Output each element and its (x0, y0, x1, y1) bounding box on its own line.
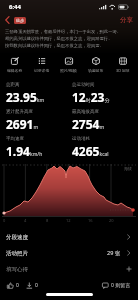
staticText: 12时23分 (72, 89, 110, 105)
button[interactable]: 徒步 (16, 18, 24, 23)
button[interactable]: 照片/视频 (55, 57, 82, 73)
staticText: 0 (3, 218, 6, 223)
staticText: 分享 (120, 16, 133, 24)
staticText: 0 (35, 282, 38, 289)
staticText: 运动消耗 (72, 136, 90, 142)
button[interactable]: 编辑名称 (2, 57, 28, 73)
staticText: 平均速度 (6, 136, 24, 142)
staticText: 活动照片 (6, 250, 28, 257)
button[interactable]: 分享 (120, 16, 133, 24)
button[interactable]: 活动照片 (6, 245, 132, 261)
staticText: 0 (16, 282, 19, 289)
staticText: 轨迹回放 (88, 68, 104, 73)
staticText: 1.94km/h (6, 143, 43, 159)
staticText: 8 (46, 218, 49, 223)
button[interactable]: 填写心得 (6, 261, 132, 277)
staticText: 分段速度 (6, 234, 28, 241)
staticText: 总距离 (6, 82, 20, 88)
staticText: 29 张 (107, 249, 121, 257)
staticText: 2691m (6, 116, 39, 132)
staticText: 最高海拔高度 (72, 109, 99, 115)
button[interactable]: 0 (7, 282, 19, 289)
staticText: 4 (24, 218, 27, 223)
staticText: 累计爬升高度 (6, 109, 33, 115)
staticText: 填写心得 (6, 266, 28, 273)
button[interactable]: 0 则留言 (102, 282, 131, 289)
staticText: 23.95km (6, 89, 45, 105)
button[interactable] (5, 16, 10, 24)
staticText: 海拔 (124, 166, 132, 171)
button[interactable]: 轨迹回放 (82, 57, 109, 73)
staticText: 总运动时间 (72, 82, 95, 88)
staticText: 记录详情 (34, 68, 50, 73)
staticText: 2754m (72, 116, 105, 132)
staticText: 3D 回放 (116, 68, 130, 73)
staticText: 编辑名称 (7, 68, 23, 73)
staticText: 4265kcal (72, 143, 109, 159)
staticText: 0 则留言 (111, 282, 131, 289)
staticText: 6:44 (9, 3, 21, 11)
staticText: 徒步 (16, 18, 24, 23)
button[interactable]: 3D 回放 (109, 57, 136, 73)
button[interactable]: 分段速度 (6, 229, 132, 245)
staticText: 12 (66, 218, 71, 223)
staticText: 16 (88, 218, 93, 223)
button[interactable]: 记录详情 (28, 57, 55, 73)
staticText: 照片/视频 (60, 68, 77, 73)
staticText: 20 (109, 218, 114, 223)
button[interactable]: 0 (26, 282, 38, 289)
staticText: 三登峰顶天朝常胜，有最后伴侣，本门一于出发，到此一游。 相约高兴以建议结伴同行，… (5, 29, 122, 49)
